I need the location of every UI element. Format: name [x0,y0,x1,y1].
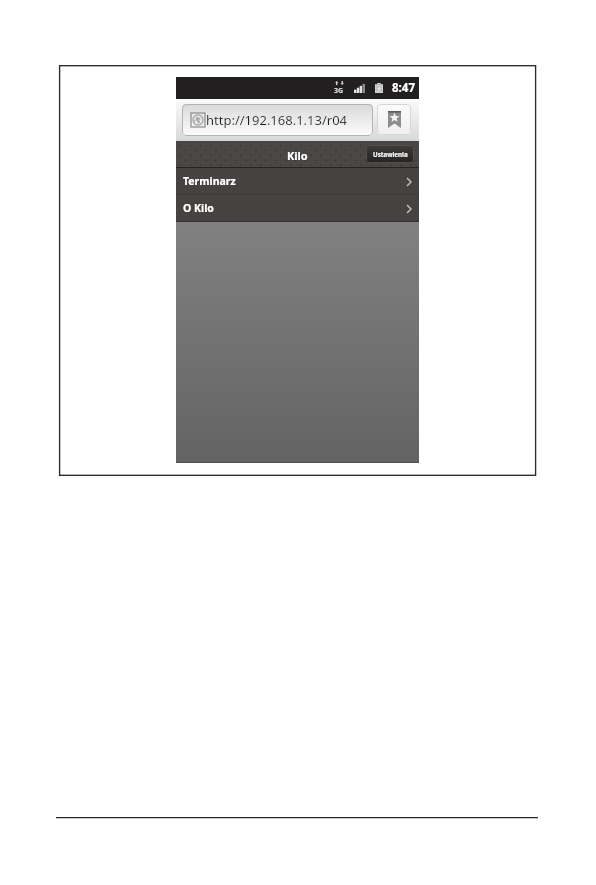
staticText: Ustawienia [373,150,408,158]
button[interactable]: Bookmarks [377,104,411,135]
staticText: Kilo [287,148,308,163]
staticText: O Kilo [183,201,214,215]
staticText: Terminarz [183,174,236,188]
staticText: http://192.168.1.13/r04 [206,111,348,129]
staticText: 8:47 [392,80,415,96]
button[interactable]: http://192.168.1.13/r04 [182,104,373,136]
button[interactable]: Terminarz [176,168,419,194]
button[interactable]: O Kilo [176,195,419,221]
button[interactable]: Ustawienia [366,145,414,163]
staticText: 3G [334,86,344,96]
